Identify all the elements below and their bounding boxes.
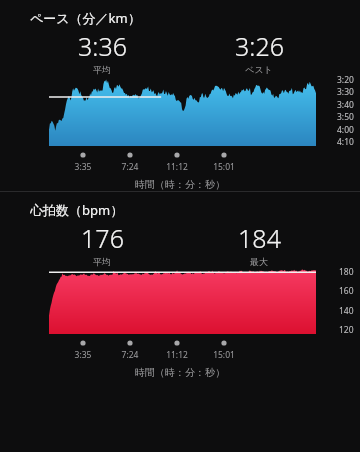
staticText: 3:36 [78,29,127,63]
staticText: 120 [339,324,354,336]
staticText: 3:35 [63,349,103,361]
staticText: 3:20 [337,74,354,86]
staticText: 160 [339,285,354,297]
staticText: 3:35 [63,161,103,173]
staticText: 4:10 [337,136,354,148]
staticText: 7:24 [110,161,150,173]
staticText: ペース（分／km） [30,9,141,27]
staticText: 11:12 [157,161,197,173]
staticText: 15:01 [204,161,244,173]
staticText: 心拍数（bpm） [30,201,124,219]
staticText: 平均 [93,256,111,267]
staticText: 15:01 [204,349,244,361]
staticText: 180 [339,266,354,278]
staticText: 3:40 [337,99,354,111]
staticText: 最大 [250,256,268,267]
staticText: 4:00 [337,124,354,136]
staticText: 7:24 [110,349,150,361]
button[interactable]: Heart rate chart [0,192,360,379]
staticText: 184 [238,221,281,255]
staticText: 140 [339,305,354,317]
staticText: 176 [81,221,124,255]
staticText: 時間（時：分：秒） [0,366,360,379]
staticText: 11:12 [157,349,197,361]
staticText: 時間（時：分：秒） [0,178,360,191]
staticText: ベスト [245,64,273,75]
staticText: 3:30 [337,86,354,98]
button[interactable]: Pace chart [0,0,360,191]
staticText: 平均 [93,64,111,75]
staticText: 3:26 [235,29,284,63]
staticText: 3:50 [337,111,354,123]
